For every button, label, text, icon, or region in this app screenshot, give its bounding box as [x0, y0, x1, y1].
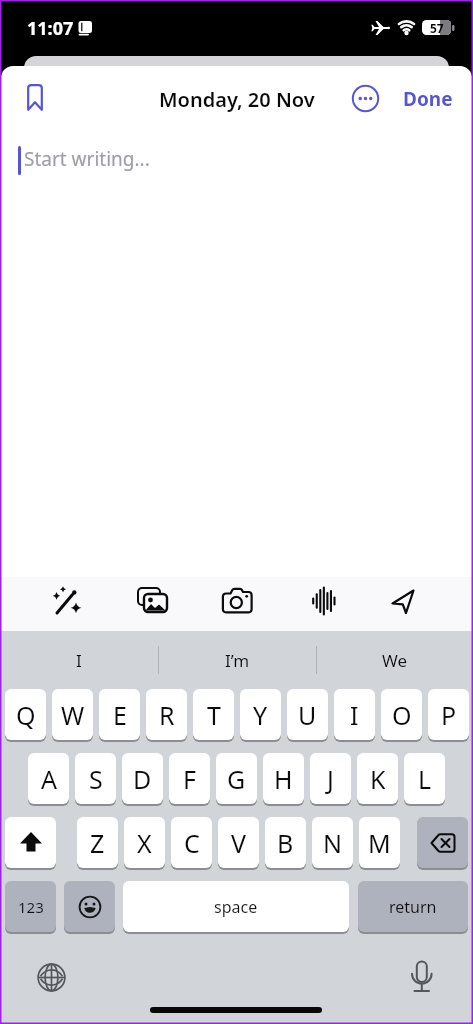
staticText: space	[214, 896, 258, 918]
button[interactable]: U	[287, 689, 328, 740]
button[interactable]: I	[334, 689, 375, 740]
button[interactable]: 123	[5, 881, 56, 932]
button[interactable]	[5, 817, 56, 868]
staticText: J	[327, 762, 334, 796]
button[interactable]: Z	[77, 817, 118, 868]
button[interactable]: Done	[399, 84, 457, 114]
button[interactable]: S	[75, 753, 116, 804]
button[interactable]: Q	[5, 689, 46, 740]
button[interactable]: V	[218, 817, 259, 868]
staticText: I’m	[225, 649, 250, 672]
staticText: A	[41, 762, 57, 796]
button[interactable]	[52, 586, 82, 616]
staticText: return	[389, 896, 437, 918]
button[interactable]: O	[381, 689, 422, 740]
button[interactable]: We	[316, 632, 473, 688]
staticText: P	[441, 698, 457, 732]
button[interactable]	[390, 587, 418, 615]
button[interactable]: space	[123, 881, 349, 932]
staticText: M	[368, 826, 391, 860]
staticText: X	[137, 826, 152, 860]
staticText: W	[61, 698, 85, 732]
button[interactable]: K	[357, 753, 398, 804]
button[interactable]: I’m	[158, 632, 316, 688]
staticText: U	[298, 698, 317, 732]
button[interactable]: G	[216, 753, 257, 804]
staticText: S	[89, 762, 103, 796]
staticText: 11:07	[27, 16, 74, 41]
staticText: Y	[253, 698, 268, 732]
staticText: D	[133, 762, 152, 796]
staticText: 57	[430, 20, 444, 35]
button[interactable]	[417, 817, 468, 868]
button[interactable]: C	[171, 817, 212, 868]
button[interactable]: B	[265, 817, 306, 868]
button[interactable]: P	[428, 689, 469, 740]
staticText: 123	[18, 897, 44, 917]
staticText: L	[418, 762, 432, 796]
button[interactable]	[37, 963, 66, 992]
button[interactable]: D	[122, 753, 163, 804]
staticText: E	[113, 698, 127, 732]
button[interactable]: T	[193, 689, 234, 740]
staticText: F	[183, 762, 196, 796]
button[interactable]	[64, 881, 115, 932]
button[interactable]	[222, 588, 253, 614]
button[interactable]: W	[52, 689, 93, 740]
button[interactable]: N	[312, 817, 353, 868]
button[interactable]	[311, 587, 337, 615]
staticText: B	[277, 826, 294, 860]
staticText: R	[159, 698, 175, 732]
button[interactable]: X	[124, 817, 165, 868]
button[interactable]: M	[359, 817, 400, 868]
staticText: V	[231, 826, 247, 860]
staticText: I	[350, 698, 359, 732]
staticText: Q	[16, 698, 36, 732]
staticText: G	[227, 762, 246, 796]
button[interactable]: E	[99, 689, 140, 740]
button[interactable]: A	[28, 753, 69, 804]
staticText: H	[274, 762, 293, 796]
staticText: Monday, 20 Nov	[159, 86, 315, 113]
staticText: C	[184, 826, 200, 860]
button[interactable]: R	[146, 689, 187, 740]
button[interactable]: return	[358, 881, 468, 932]
staticText: Done	[403, 86, 453, 112]
staticText: We	[382, 649, 408, 672]
button[interactable]	[408, 959, 435, 995]
staticText: O	[392, 698, 412, 732]
staticText: Start writing...	[24, 146, 150, 172]
staticText: I	[76, 649, 82, 672]
button[interactable]	[351, 84, 380, 113]
staticText: T	[207, 698, 221, 732]
button[interactable]: H	[263, 753, 304, 804]
button[interactable]: Y	[240, 689, 281, 740]
button[interactable]: F	[169, 753, 210, 804]
staticText: K	[370, 762, 386, 796]
button[interactable]: I	[0, 632, 158, 688]
staticText: Z	[90, 826, 105, 860]
button[interactable]: L	[404, 753, 445, 804]
button[interactable]	[137, 587, 169, 615]
button[interactable]	[27, 84, 44, 111]
staticText: N	[323, 826, 343, 860]
button[interactable]: J	[310, 753, 351, 804]
